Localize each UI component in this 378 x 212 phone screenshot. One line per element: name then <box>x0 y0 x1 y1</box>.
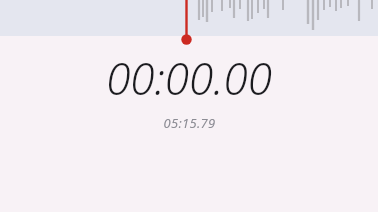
staticText: 05:15.79 <box>163 114 216 132</box>
button[interactable]: Recording waveform timeline <box>0 0 378 36</box>
button[interactable]: 00:00.00 <box>0 48 378 132</box>
staticText: 00:00.00 <box>106 48 272 108</box>
other: Playback position marker <box>0 0 378 212</box>
